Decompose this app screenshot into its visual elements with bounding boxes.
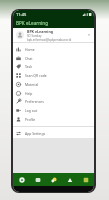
staticText: Scan QR code xyxy=(25,73,47,78)
staticText: Log out xyxy=(25,108,38,113)
button[interactable]: App Settings xyxy=(13,129,94,138)
button[interactable]: Store xyxy=(78,173,94,186)
button[interactable]: Drive xyxy=(62,173,78,186)
staticText: Material xyxy=(25,82,39,87)
button[interactable]: Camera xyxy=(30,173,46,186)
staticText: BPK eLearning xyxy=(27,29,54,34)
button[interactable]: Material xyxy=(13,80,94,89)
staticText: Task xyxy=(25,64,32,69)
staticText: Preferences xyxy=(25,99,44,104)
button[interactable]: Help xyxy=(13,89,94,98)
button[interactable]: Photos xyxy=(46,173,62,186)
button[interactable]: BPK eLearning xyxy=(13,28,94,42)
button[interactable]: Chat xyxy=(13,54,94,63)
button[interactable]: Phone xyxy=(13,173,30,186)
button[interactable]: Home xyxy=(13,45,94,54)
button[interactable]: Preferences xyxy=(13,97,94,106)
button[interactable]: Log out xyxy=(13,106,94,115)
staticText: App Settings xyxy=(25,131,46,136)
button[interactable]: Scan QR code xyxy=(13,71,94,80)
staticText: bpk.informasi@bpkpenabur.or.id xyxy=(27,38,72,42)
staticText: Help xyxy=(25,91,33,96)
staticText: Chat xyxy=(25,56,33,61)
button[interactable]: Profile xyxy=(13,115,94,124)
staticText: 11:45 xyxy=(16,12,27,17)
staticText: SD Sunday xyxy=(27,34,42,38)
staticText: BPK eLearning xyxy=(16,20,49,26)
staticText: Profile xyxy=(25,117,36,122)
staticText: Home xyxy=(25,47,35,52)
button[interactable]: Task xyxy=(13,62,94,71)
